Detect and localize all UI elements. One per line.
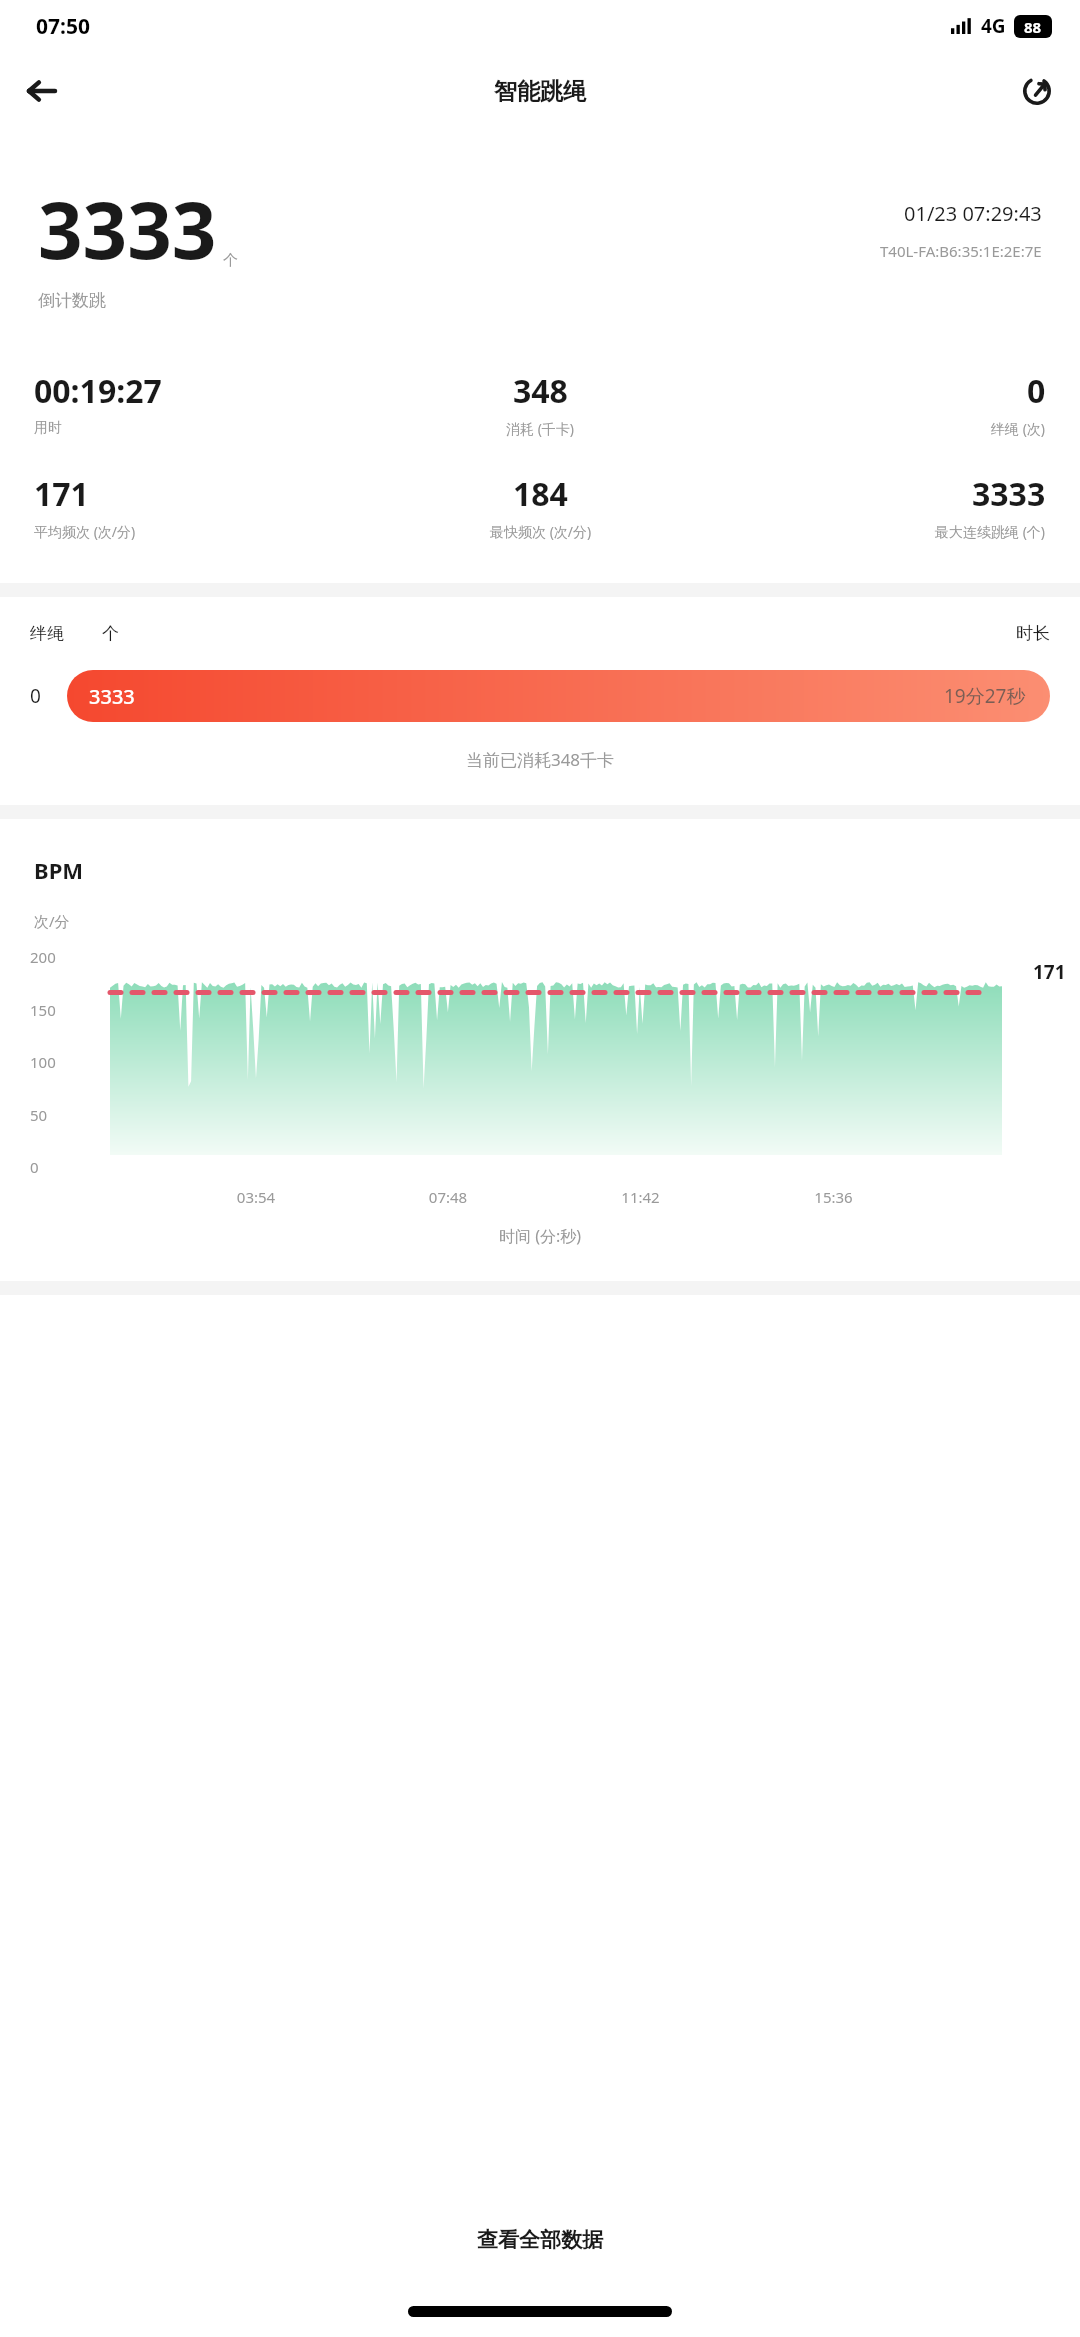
- staticText: 3333: [972, 472, 1046, 516]
- staticText: 0: [30, 683, 41, 709]
- staticText: 200: [30, 947, 56, 967]
- staticText: 11:42: [544, 1187, 737, 1207]
- staticText: 150: [30, 1000, 56, 1020]
- staticText: 4G: [981, 13, 1006, 39]
- staticText: 00:19:27: [34, 369, 162, 413]
- staticText: 用时: [34, 419, 62, 437]
- staticText: 348: [513, 369, 568, 413]
- button[interactable]: 3333: [67, 670, 1050, 722]
- staticText: 184: [513, 472, 568, 516]
- staticText: T40L-FA:B6:35:1E:2E:7E: [880, 241, 1042, 261]
- staticText: 50: [30, 1105, 48, 1125]
- button[interactable]: Back: [12, 61, 72, 121]
- staticText: 07:48: [352, 1187, 544, 1207]
- staticText: 0: [1027, 369, 1046, 413]
- staticText: 19分27秒: [944, 683, 1026, 709]
- staticText: 个: [223, 251, 238, 270]
- staticText: 3333: [89, 683, 135, 710]
- staticText: 100: [30, 1052, 56, 1072]
- staticText: 当前已消耗348千卡: [0, 748, 1080, 771]
- staticText: 个: [102, 623, 119, 644]
- staticText: 时长: [1016, 623, 1050, 644]
- staticText: 01/23 07:29:43: [904, 200, 1042, 227]
- staticText: 查看全部数据: [477, 2227, 603, 2253]
- staticText: 智能跳绳: [494, 77, 586, 106]
- staticText: 15:36: [737, 1187, 930, 1207]
- staticText: 03:54: [160, 1187, 352, 1207]
- staticText: 07:50: [36, 12, 90, 41]
- staticText: BPM: [34, 855, 84, 885]
- staticText: 消耗 (千卡): [506, 419, 575, 438]
- staticText: 171: [1033, 959, 1066, 985]
- staticText: 3333: [38, 176, 217, 282]
- staticText: 最快频次 (次/分): [490, 522, 592, 541]
- staticText: 平均频次 (次/分): [34, 522, 136, 541]
- staticText: 绊绳 (次): [991, 419, 1046, 438]
- staticText: 88: [1024, 17, 1042, 37]
- button[interactable]: 查看全部数据: [0, 2195, 1080, 2285]
- staticText: 次/分: [34, 911, 70, 931]
- staticText: 时间 (分:秒): [0, 1225, 1080, 1247]
- staticText: 最大连续跳绳 (个): [935, 522, 1046, 541]
- staticText: 171: [34, 472, 89, 516]
- button[interactable]: Refresh: [1008, 62, 1066, 120]
- staticText: 绊绳: [30, 623, 64, 644]
- staticText: 倒计数跳: [38, 290, 106, 311]
- staticText: 0: [30, 1157, 39, 1177]
